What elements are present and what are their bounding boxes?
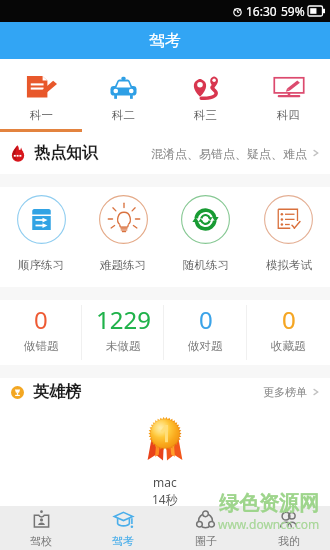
button[interactable]: 驾考 <box>82 506 164 550</box>
button[interactable]: 科二 <box>82 59 164 132</box>
staticText: 科一 <box>30 108 53 122</box>
staticText: mac <box>153 474 177 490</box>
staticText: www.downcc.com <box>218 516 320 532</box>
staticText: 科四 <box>277 108 300 122</box>
staticText: 顺序练习 <box>18 258 64 272</box>
staticText: 难题练习 <box>100 258 146 272</box>
staticText: 圈子 <box>195 534 217 548</box>
staticText: 驾考 <box>149 31 181 51</box>
button[interactable]: 0 <box>247 300 330 365</box>
staticText: 做错题 <box>24 339 59 353</box>
staticText: 驾考 <box>112 534 134 548</box>
staticText: 更多榜单 <box>263 385 307 399</box>
button[interactable]: 驾校 <box>0 506 82 550</box>
staticText: 我的 <box>278 534 300 548</box>
staticText: 收藏题 <box>271 339 306 353</box>
staticText: 热点知识 <box>34 143 98 163</box>
staticText: 0 <box>282 303 296 336</box>
staticText: 做对题 <box>188 339 223 353</box>
button[interactable]: 我的 <box>247 506 330 550</box>
staticText: 0 <box>34 303 48 336</box>
button[interactable]: 随机练习 <box>164 187 247 287</box>
staticText: 1229 <box>96 303 151 336</box>
staticText: 科二 <box>112 108 135 122</box>
button[interactable]: 0 <box>164 300 247 365</box>
button[interactable]: 科四 <box>247 59 330 132</box>
staticText: 59% <box>281 3 305 19</box>
staticText: 模拟考试 <box>266 258 312 272</box>
staticText: 绿色资源网 <box>219 491 319 516</box>
staticText: 随机练习 <box>183 258 229 272</box>
button[interactable]: 更多榜单 <box>263 385 320 399</box>
button[interactable]: 圈子 <box>164 506 247 550</box>
button[interactable]: 科一 <box>0 59 82 132</box>
staticText: 16:30 <box>246 3 277 19</box>
button[interactable]: 1229 <box>82 300 164 365</box>
staticText: 混淆点、易错点、疑点、难点 <box>151 146 307 161</box>
staticText: 英雄榜 <box>33 382 81 402</box>
button[interactable]: 难题练习 <box>82 187 164 287</box>
staticText: 0 <box>199 303 213 336</box>
staticText: 驾校 <box>30 534 52 548</box>
button[interactable]: 热点知识 <box>0 132 330 174</box>
button[interactable]: 模拟考试 <box>247 187 330 287</box>
staticText: 14秒 <box>152 491 178 506</box>
button[interactable]: 顺序练习 <box>0 187 82 287</box>
button[interactable]: 科三 <box>164 59 247 132</box>
button[interactable]: 0 <box>0 300 82 365</box>
staticText: 未做题 <box>106 339 141 353</box>
staticText: 科三 <box>194 108 217 122</box>
